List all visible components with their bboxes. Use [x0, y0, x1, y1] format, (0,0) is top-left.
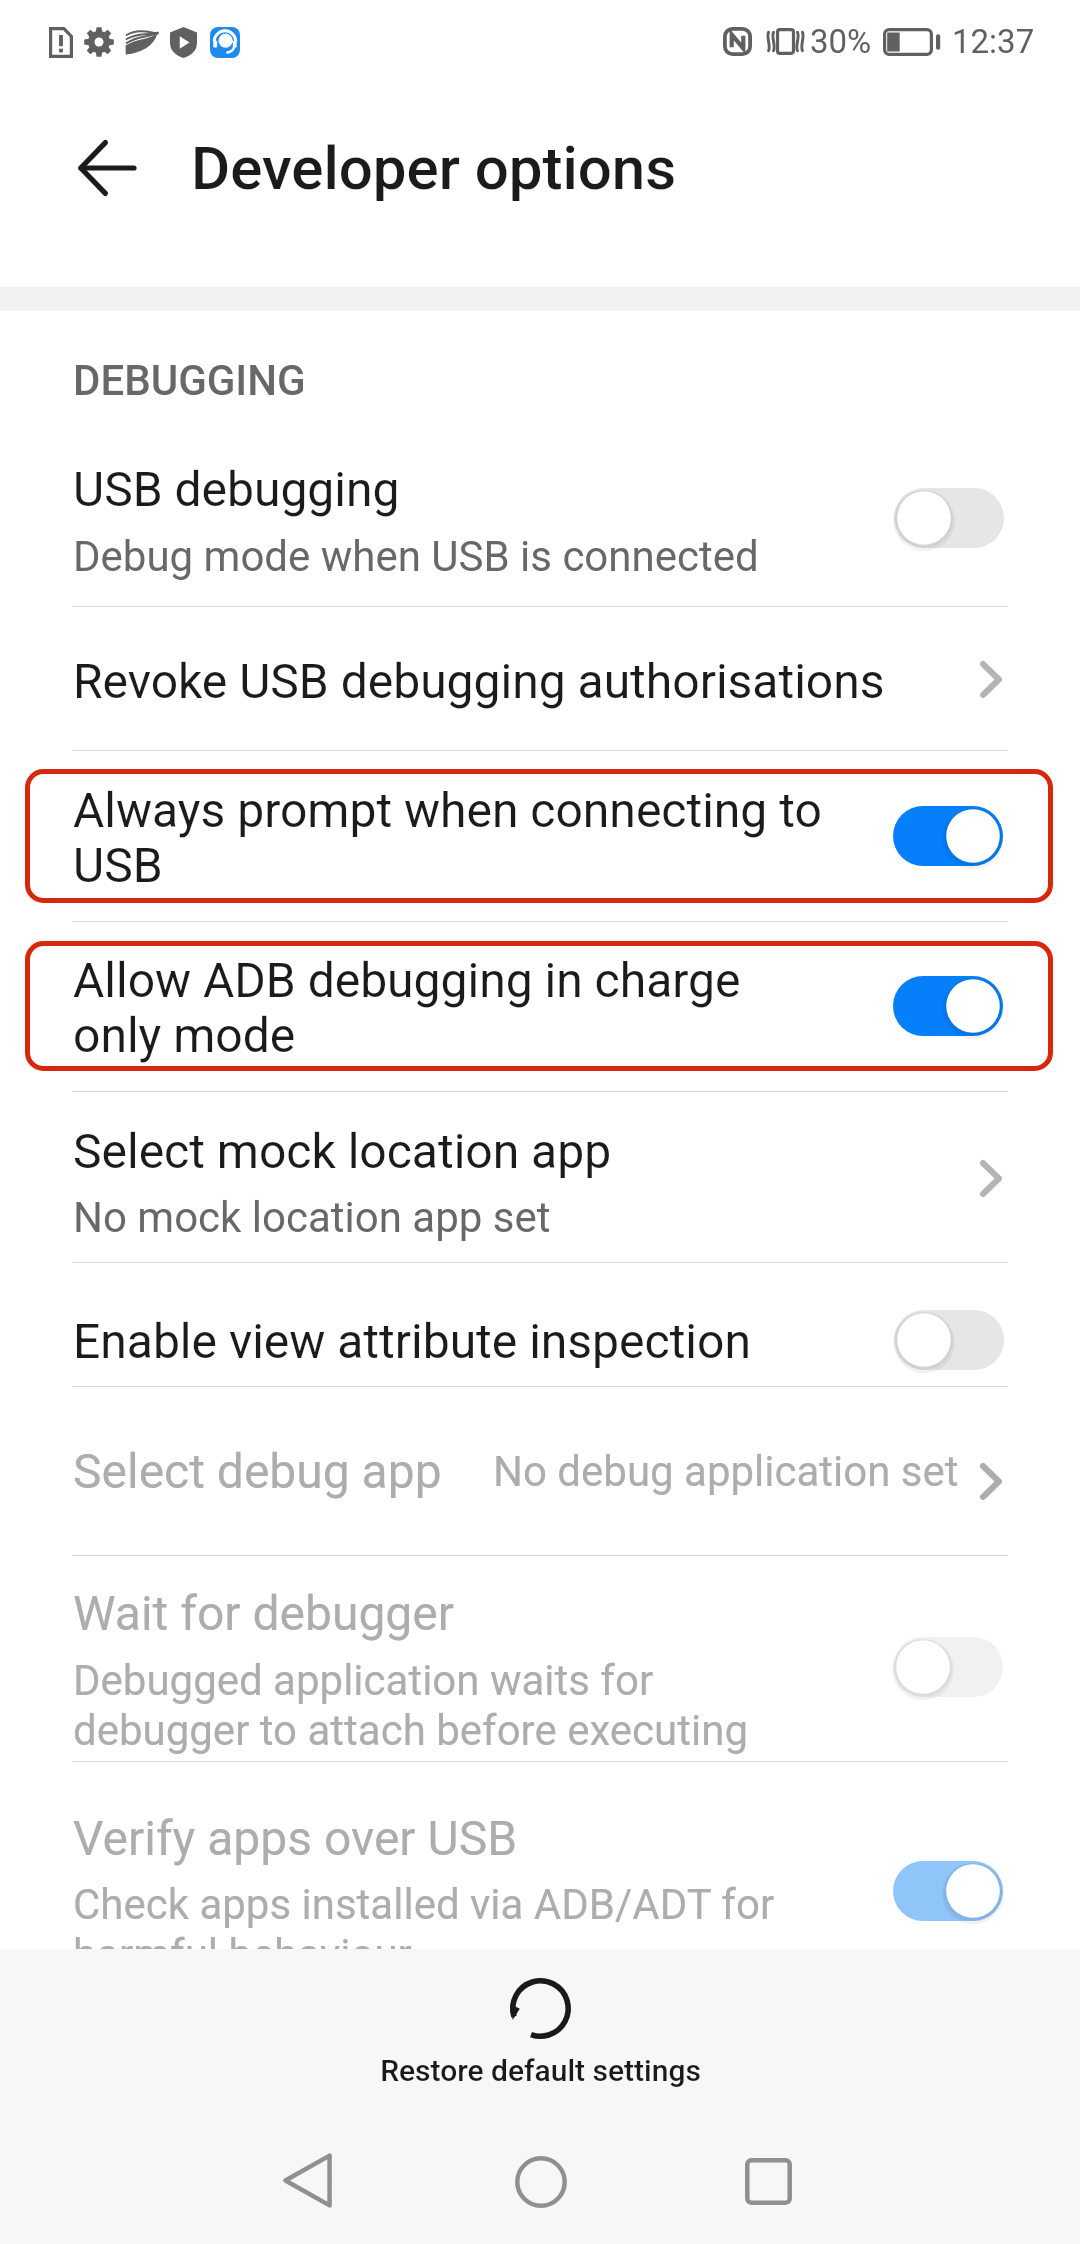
button[interactable]: Recent apps: [722, 2135, 814, 2227]
staticText: No debug application set: [493, 1447, 959, 1496]
staticText: Revoke USB debugging authorisations: [73, 653, 885, 709]
button[interactable]: Back: [261, 2134, 353, 2226]
staticText: Enable view attribute inspection: [73, 1313, 751, 1369]
button[interactable]: Enable view attribute inspection: [0, 1263, 1080, 1386]
button[interactable]: Verify apps over USB: [893, 1861, 1003, 1921]
button[interactable]: USB debugging: [0, 400, 1080, 606]
button[interactable]: Wait for debugger: [0, 1556, 1080, 1761]
button[interactable]: Select debug app: [0, 1387, 1080, 1555]
staticText: No mock location app set: [73, 1193, 551, 1242]
button[interactable]: Wait for debugger: [893, 1637, 1003, 1697]
button[interactable]: Setting: [893, 976, 1003, 1036]
button[interactable]: Setting: [893, 806, 1003, 866]
button[interactable]: Always prompt when connecting to USB: [25, 769, 1053, 903]
staticText: USB debugging: [73, 461, 400, 517]
button[interactable]: Back: [61, 122, 153, 214]
button[interactable]: Verify apps over USB: [0, 1762, 1080, 1946]
button[interactable]: Home: [495, 2136, 587, 2228]
staticText: Select debug app: [73, 1443, 442, 1499]
button[interactable]: Revoke USB debugging authorisations: [0, 607, 1080, 750]
staticText: Wait for debugger: [73, 1585, 454, 1641]
staticText: 12:37: [952, 22, 1035, 61]
button[interactable]: Enable view attribute inspection: [894, 1310, 1004, 1370]
staticText: Verify apps over USB: [73, 1810, 518, 1866]
button[interactable]: Select mock location app: [0, 1092, 1080, 1262]
staticText: Restore default settings: [380, 2053, 701, 2088]
button[interactable]: Allow ADB debugging in charge only mode: [25, 941, 1053, 1071]
staticText: DEBUGGING: [73, 356, 306, 405]
staticText: Check apps installed via ADB/ADT for har…: [73, 1880, 775, 1979]
staticText: Select mock location app: [73, 1123, 612, 1179]
button[interactable]: Restore default settings: [340, 1970, 740, 2100]
staticText: Always prompt when connecting to USB: [73, 782, 822, 894]
staticText: Developer options: [191, 133, 677, 203]
button[interactable]: USB debugging: [894, 488, 1004, 548]
staticText: 30%: [810, 22, 872, 61]
staticText: Allow ADB debugging in charge only mode: [73, 952, 741, 1064]
staticText: Debugged application waits for debugger …: [73, 1656, 748, 1755]
staticText: Debug mode when USB is connected: [73, 532, 759, 581]
